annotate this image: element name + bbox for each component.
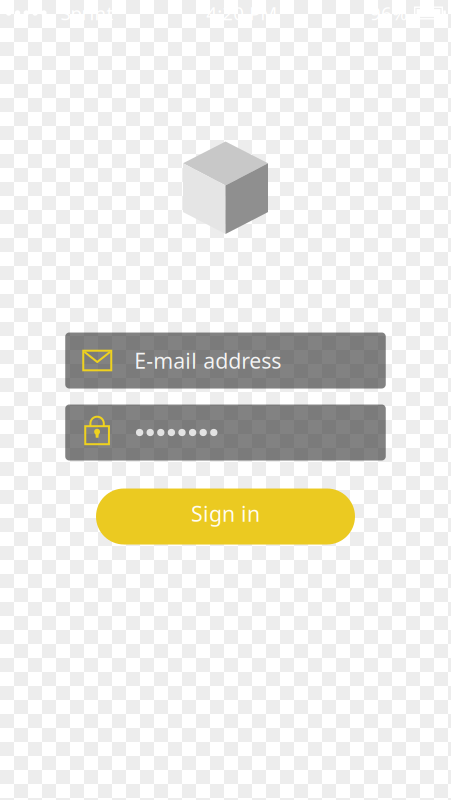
staticText: 96%	[370, 1, 408, 25]
staticText: E-mail address	[134, 346, 281, 375]
staticText: Sprint	[61, 1, 114, 25]
button[interactable]: Sign in	[96, 488, 355, 544]
button[interactable]: E-mail address	[65, 332, 386, 388]
button[interactable]	[65, 404, 386, 460]
staticText: Sign in	[191, 499, 260, 528]
staticText: 4:20 PM	[206, 1, 277, 25]
